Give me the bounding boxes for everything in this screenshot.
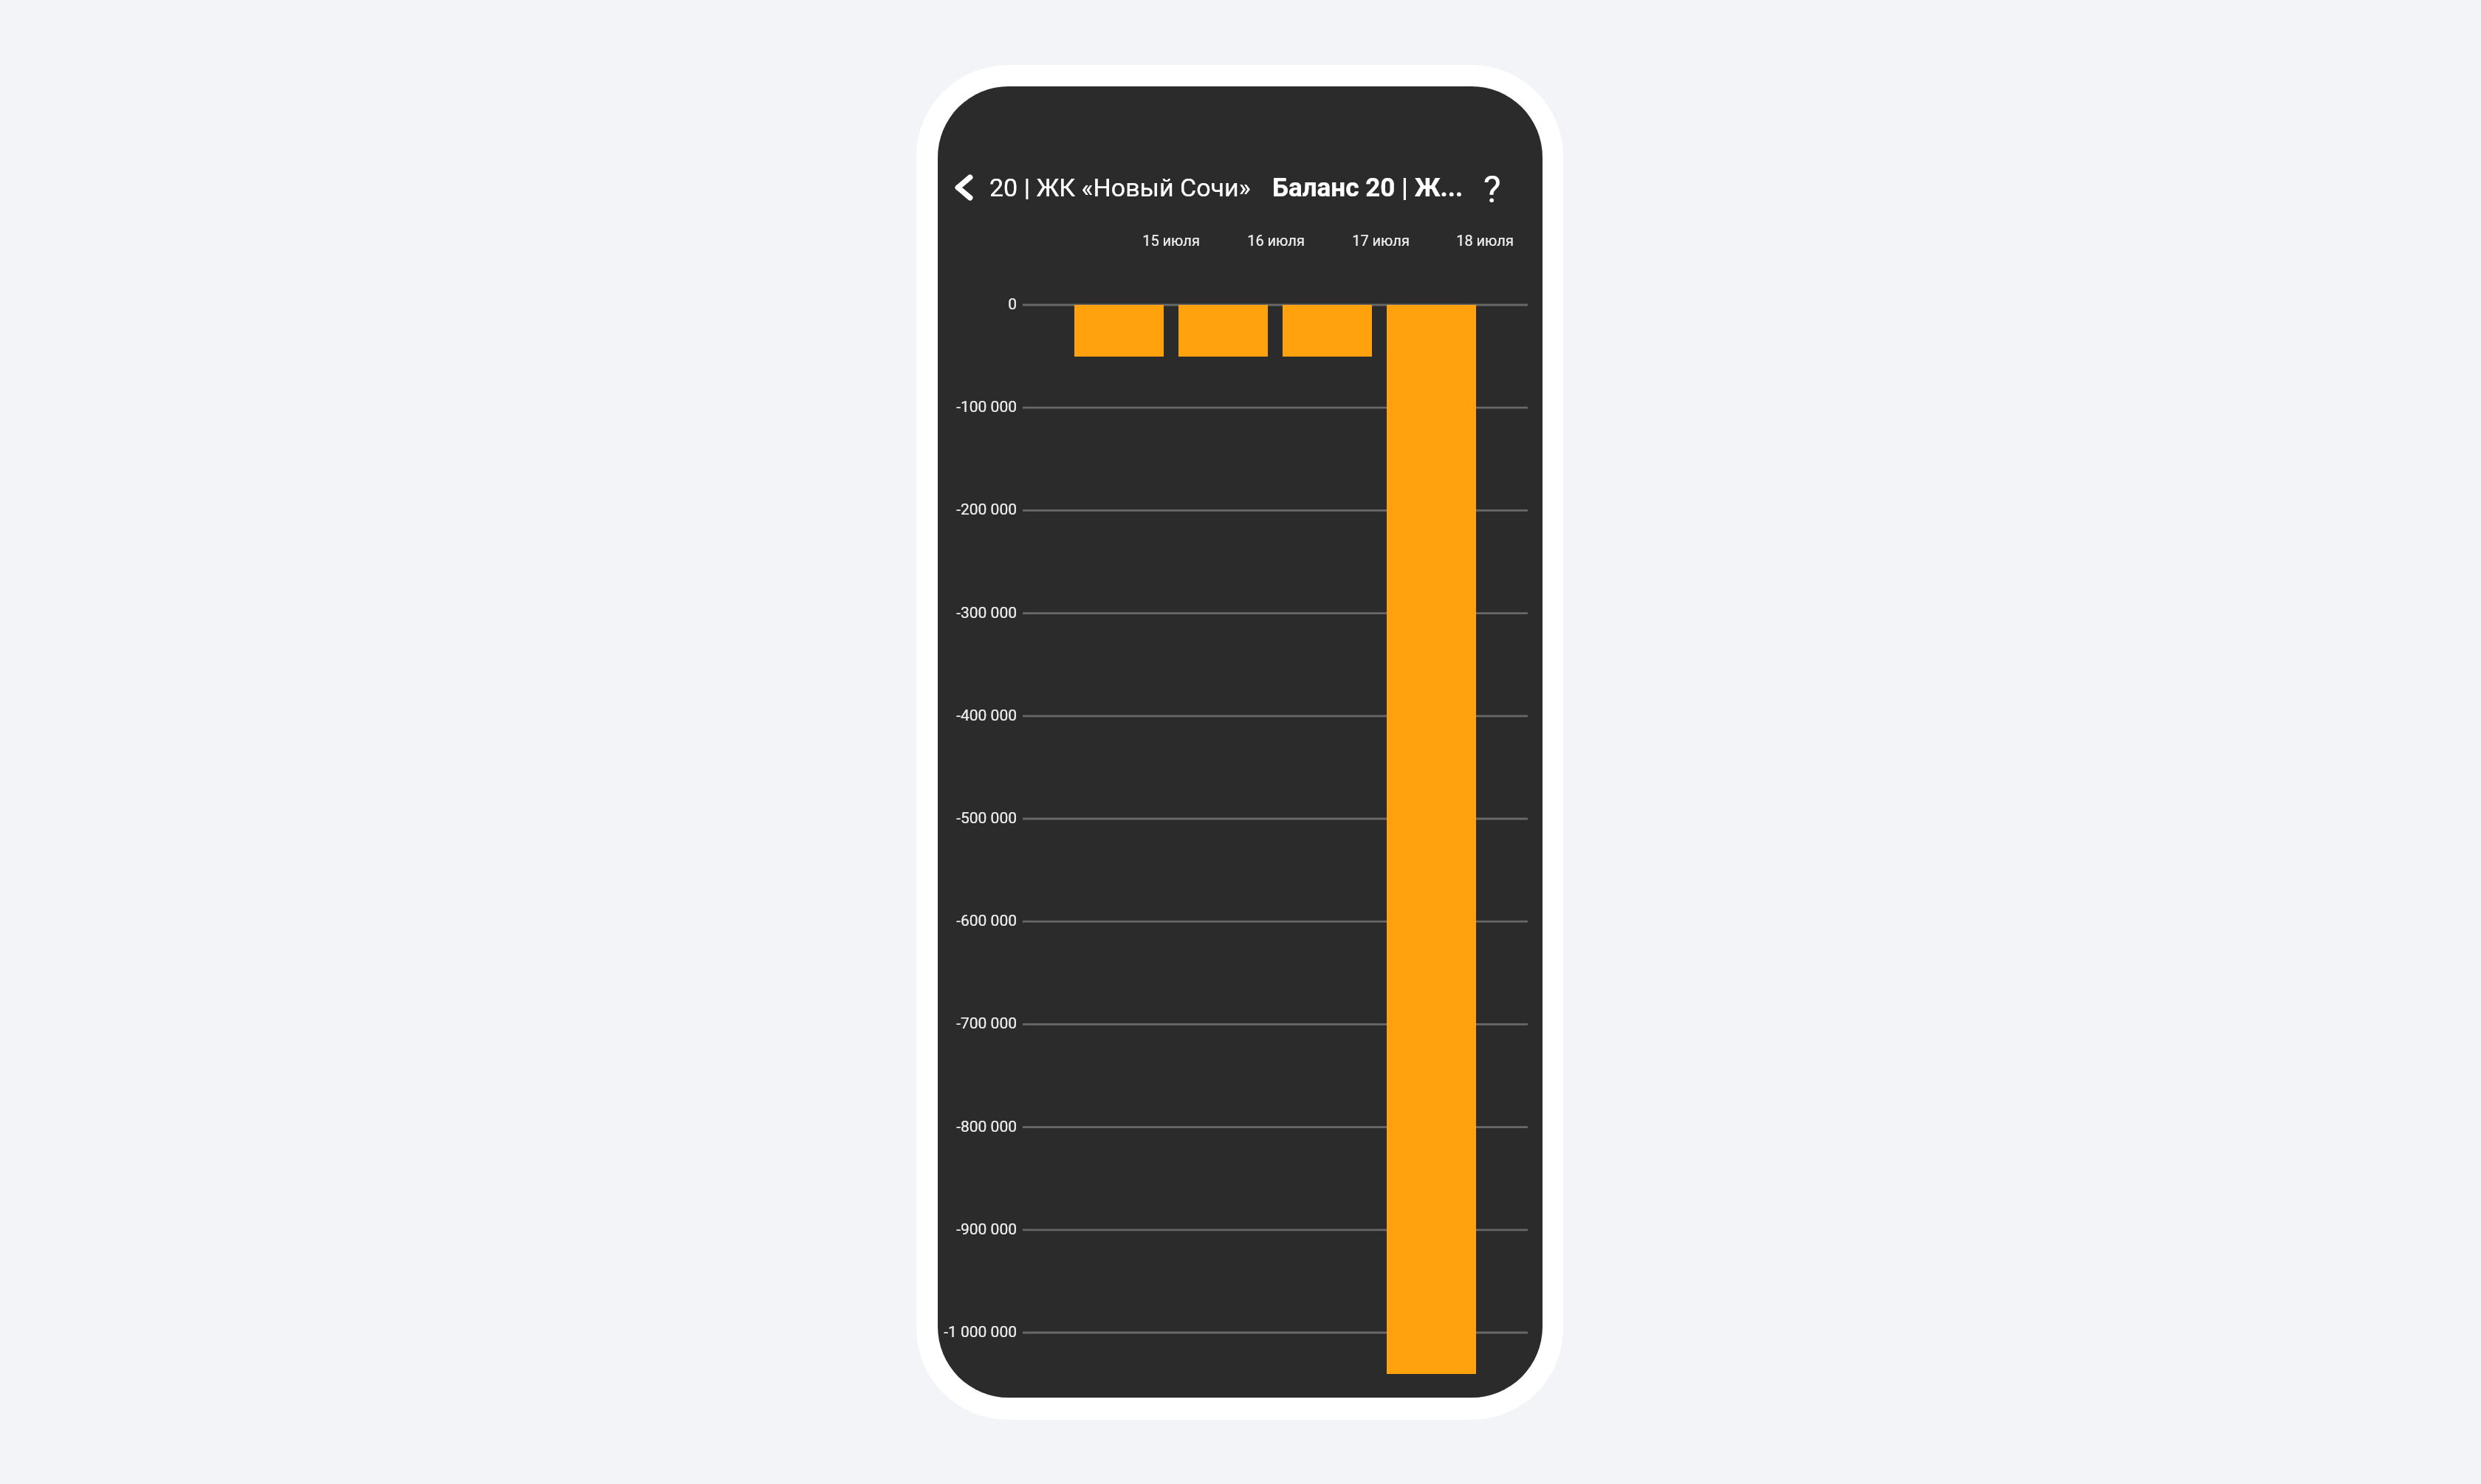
staticText: -700 000 <box>956 1014 1017 1033</box>
staticText: 17 июля <box>1352 232 1410 249</box>
staticText: -900 000 <box>956 1220 1017 1239</box>
button[interactable]: 15 июля <box>1074 305 1164 357</box>
button[interactable]: 17 июля <box>1329 230 1432 250</box>
staticText: -800 000 <box>956 1118 1017 1136</box>
staticText: 0 <box>1008 295 1017 314</box>
button[interactable]: 20 | ЖК «Новый Сочи» <box>989 173 1251 202</box>
staticText: 16 июля <box>1247 232 1305 249</box>
staticText: -400 000 <box>956 707 1017 725</box>
staticText: -1 000 000 <box>944 1323 1017 1342</box>
button[interactable]: 16 июля <box>1178 305 1268 357</box>
staticText: -100 000 <box>956 398 1017 416</box>
staticText: 18 июля <box>1456 232 1514 249</box>
button[interactable]: 18 июля <box>1433 230 1537 250</box>
button[interactable]: Help <box>1473 168 1511 207</box>
staticText: ? <box>1483 168 1501 207</box>
staticText: Баланс 20 | Ж... <box>1272 173 1463 203</box>
button[interactable]: Back <box>947 168 985 207</box>
staticText: 15 июля <box>1142 232 1200 249</box>
button[interactable]: 15 июля <box>1119 230 1223 250</box>
button[interactable]: 16 июля <box>1224 230 1328 250</box>
staticText: 20 | ЖК «Новый Сочи» <box>989 173 1251 202</box>
staticText: -600 000 <box>956 912 1017 930</box>
staticText: -300 000 <box>956 604 1017 622</box>
staticText: -500 000 <box>956 809 1017 828</box>
staticText: -200 000 <box>956 501 1017 519</box>
